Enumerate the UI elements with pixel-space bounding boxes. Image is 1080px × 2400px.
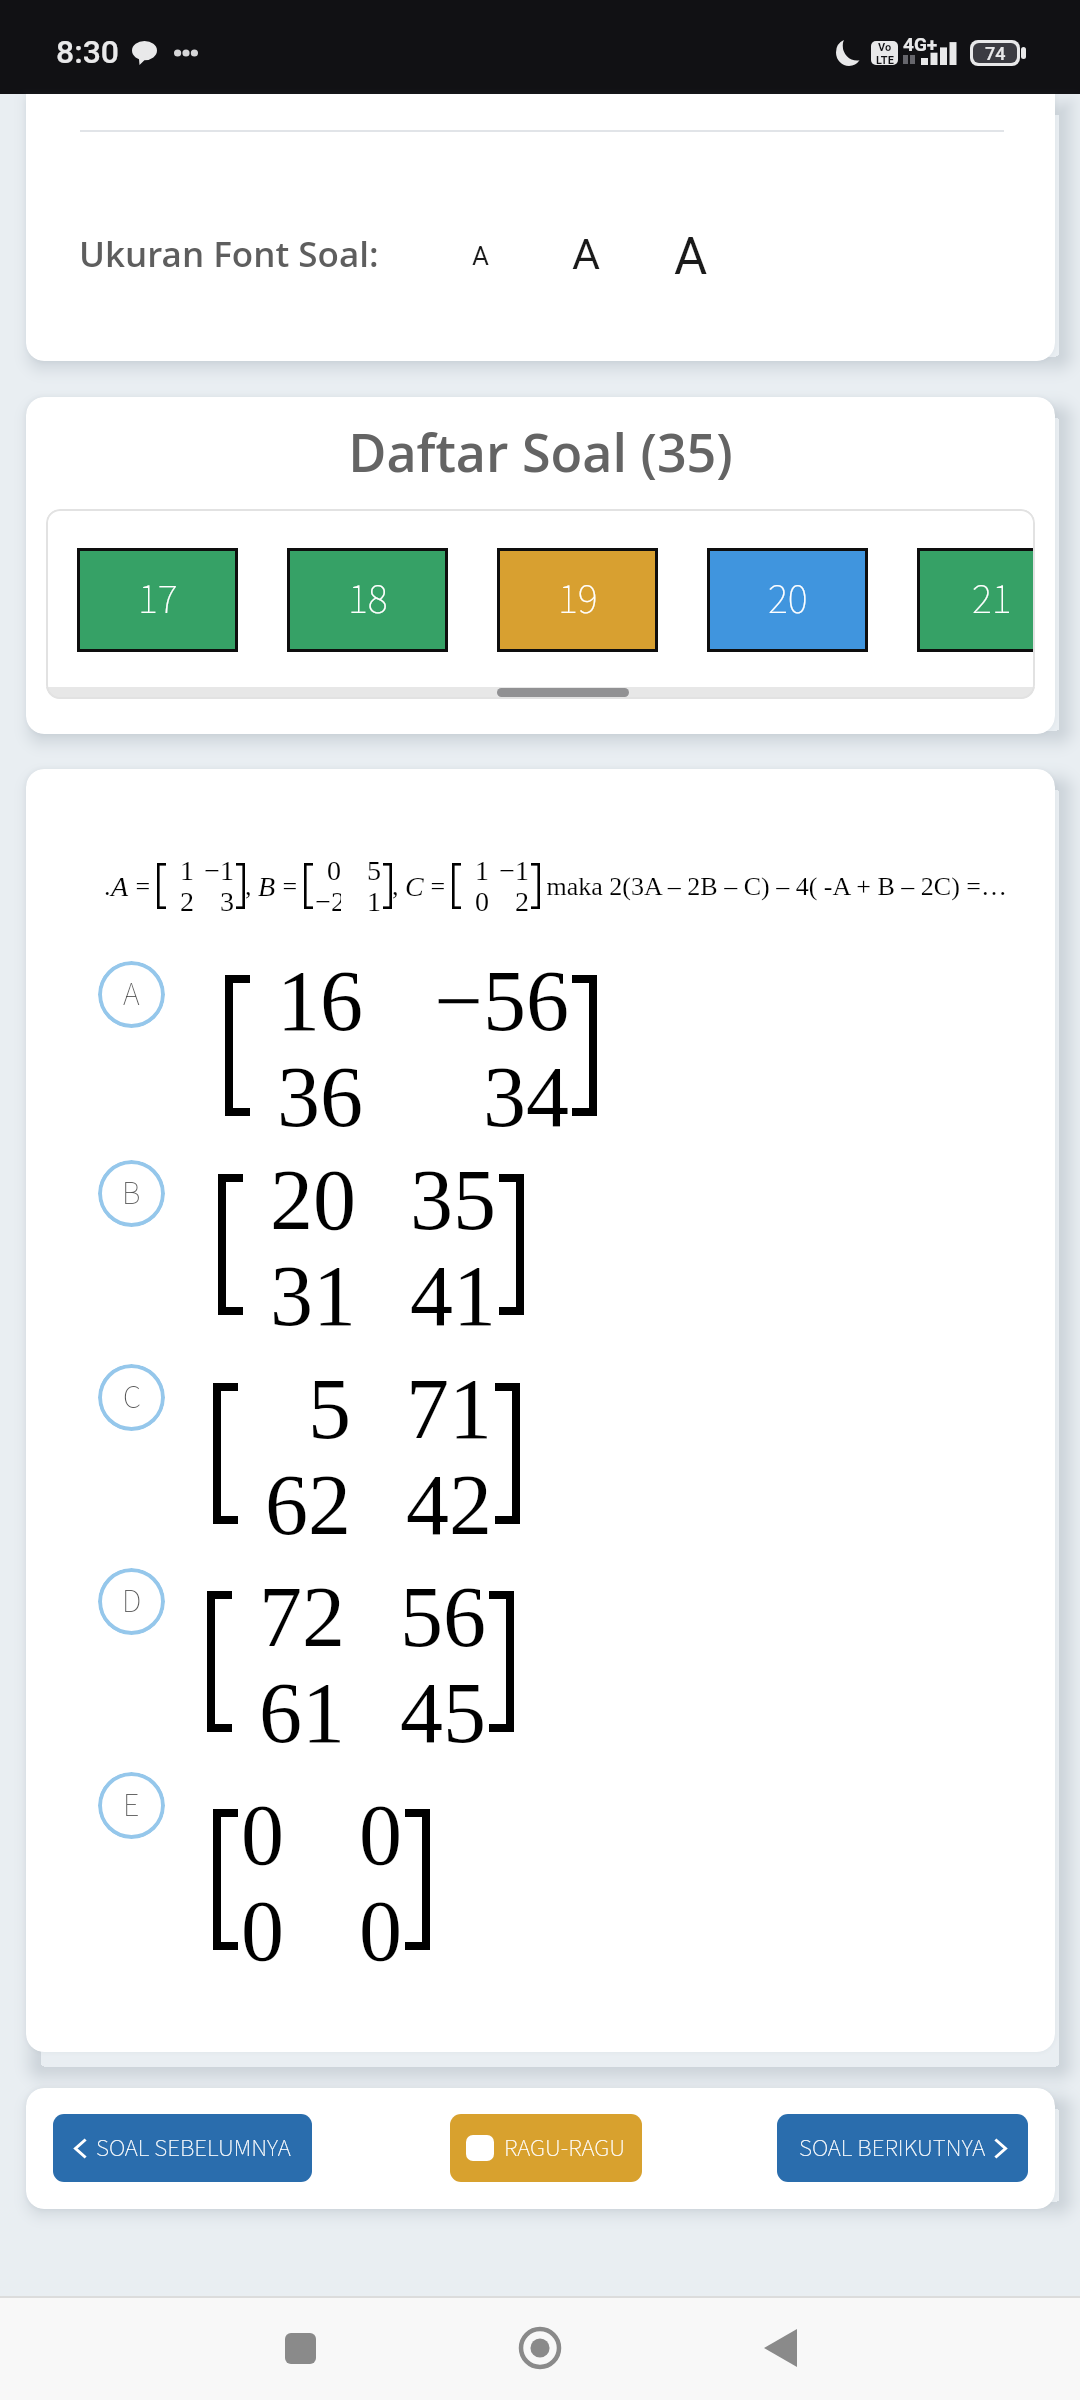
- button[interactable]: Home: [450, 2318, 630, 2378]
- staticText: RAGU-RAGU: [504, 2130, 626, 2166]
- staticText: 0: [315, 855, 341, 886]
- staticText: B: [258, 871, 276, 902]
- staticText: 62: [241, 1457, 351, 1552]
- staticText: LTE: [876, 54, 894, 65]
- staticText: A: [472, 241, 489, 271]
- staticText: 0: [463, 886, 489, 917]
- button[interactable]: D: [26, 1549, 1055, 1752]
- staticText: 41: [356, 1248, 496, 1343]
- staticText: 35: [356, 1152, 496, 1247]
- staticText: 16: [253, 953, 363, 1048]
- button[interactable]: A: [26, 942, 1055, 1145]
- staticText: 72: [235, 1569, 345, 1664]
- button[interactable]: SOAL SEBELUMNYA: [53, 2114, 312, 2182]
- staticText: 20: [768, 570, 808, 630]
- staticText: 3: [194, 886, 234, 917]
- staticText: 5: [241, 1361, 351, 1456]
- staticText: ,: [392, 872, 405, 901]
- staticText: A: [674, 227, 708, 287]
- staticText: 56: [345, 1569, 486, 1664]
- staticText: A: [123, 972, 140, 1018]
- staticText: 0: [241, 1883, 282, 1978]
- staticText: A: [111, 871, 129, 902]
- staticText: 71: [351, 1361, 492, 1456]
- staticText: 2: [168, 886, 194, 917]
- staticText: 0: [241, 1787, 282, 1882]
- staticText: 4G+: [903, 33, 938, 55]
- staticText: 2: [489, 886, 529, 917]
- staticText: 8:30: [56, 33, 120, 71]
- staticText: =: [276, 872, 304, 901]
- staticText: 1: [168, 855, 194, 886]
- button[interactable]: Recent apps: [210, 2318, 390, 2378]
- staticText: 31: [246, 1248, 356, 1343]
- staticText: ,: [245, 872, 258, 901]
- button[interactable]: 21: [917, 548, 1035, 652]
- staticText: 18: [348, 570, 388, 630]
- button[interactable]: B: [26, 1141, 1055, 1344]
- staticText: =: [129, 872, 157, 901]
- staticText: 1: [341, 886, 381, 917]
- staticText: 1: [463, 855, 489, 886]
- staticText: 21: [972, 570, 1012, 630]
- staticText: −2: [315, 886, 341, 917]
- staticText: 61: [235, 1665, 345, 1760]
- button[interactable]: 18: [287, 548, 448, 652]
- button[interactable]: 19: [497, 548, 658, 652]
- staticText: 74: [985, 43, 1006, 63]
- button[interactable]: 17: [77, 548, 238, 652]
- staticText: 19: [558, 570, 598, 630]
- staticText: A: [572, 229, 601, 279]
- staticText: 34: [363, 1049, 569, 1144]
- button[interactable]: E: [26, 1753, 1055, 1956]
- button[interactable]: Ukuran font besar: [641, 214, 741, 300]
- staticText: 0: [282, 1787, 402, 1882]
- button[interactable]: 20: [707, 548, 868, 652]
- staticText: −1: [489, 855, 529, 886]
- staticText: 0: [282, 1883, 402, 1978]
- staticText: maka 2(3A – 2B – C) – 4( -A + B – 2C) =…: [540, 872, 1007, 901]
- staticText: 36: [253, 1049, 363, 1144]
- staticText: 42: [351, 1457, 492, 1552]
- staticText: 17: [138, 570, 178, 630]
- staticText: B: [122, 1171, 141, 1217]
- staticText: −56: [363, 953, 569, 1048]
- button[interactable]: SOAL BERIKUTNYA: [777, 2114, 1028, 2182]
- staticText: C: [405, 871, 424, 902]
- staticText: Daftar Soal (35): [26, 416, 1055, 487]
- button[interactable]: Ukuran font kecil: [444, 219, 516, 293]
- button[interactable]: Back: [690, 2318, 870, 2378]
- staticText: 5: [341, 855, 381, 886]
- staticText: E: [123, 1783, 140, 1829]
- staticText: 20: [246, 1152, 356, 1247]
- staticText: D: [122, 1579, 142, 1625]
- button[interactable]: Ukuran font sedang: [540, 213, 632, 295]
- staticText: .: [104, 872, 111, 901]
- staticText: Ukuran Font Soal:: [79, 230, 379, 278]
- staticText: −1: [194, 855, 234, 886]
- staticText: SOAL SEBELUMNYA: [96, 2130, 291, 2166]
- staticText: =: [424, 872, 452, 901]
- staticText: SOAL BERIKUTNYA: [799, 2130, 986, 2166]
- button[interactable]: RAGU-RAGU: [450, 2114, 642, 2182]
- staticText: 45: [345, 1665, 486, 1760]
- staticText: Vo: [878, 41, 892, 54]
- button[interactable]: C: [26, 1345, 1055, 1548]
- staticText: C: [123, 1375, 141, 1421]
